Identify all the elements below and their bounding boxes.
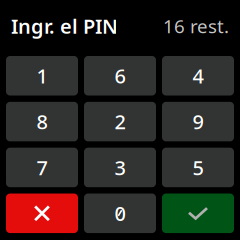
- staticText: Ingr. el PIN: [11, 13, 118, 39]
- staticText: 6: [114, 62, 125, 89]
- button[interactable]: Delete: [6, 194, 78, 233]
- staticText: 3: [114, 154, 125, 181]
- button[interactable]: 5: [162, 148, 234, 187]
- staticText: 16 rest.: [163, 14, 229, 38]
- button[interactable]: 3: [84, 148, 156, 187]
- button[interactable]: 1: [6, 56, 78, 95]
- staticText: 5: [192, 154, 203, 181]
- button[interactable]: Confirm: [162, 194, 234, 233]
- button[interactable]: 7: [6, 148, 78, 187]
- button[interactable]: 0: [84, 194, 156, 233]
- button[interactable]: 2: [84, 102, 156, 141]
- staticText: 7: [36, 154, 47, 181]
- staticText: 2: [114, 108, 125, 135]
- button[interactable]: 9: [162, 102, 234, 141]
- staticText: 4: [192, 62, 203, 89]
- staticText: 9: [192, 108, 203, 135]
- button[interactable]: 8: [6, 102, 78, 141]
- staticText: 8: [36, 108, 47, 135]
- button[interactable]: 4: [162, 56, 234, 95]
- button[interactable]: 6: [84, 56, 156, 95]
- staticText: 1: [36, 62, 47, 89]
- staticText: 0: [114, 200, 125, 227]
